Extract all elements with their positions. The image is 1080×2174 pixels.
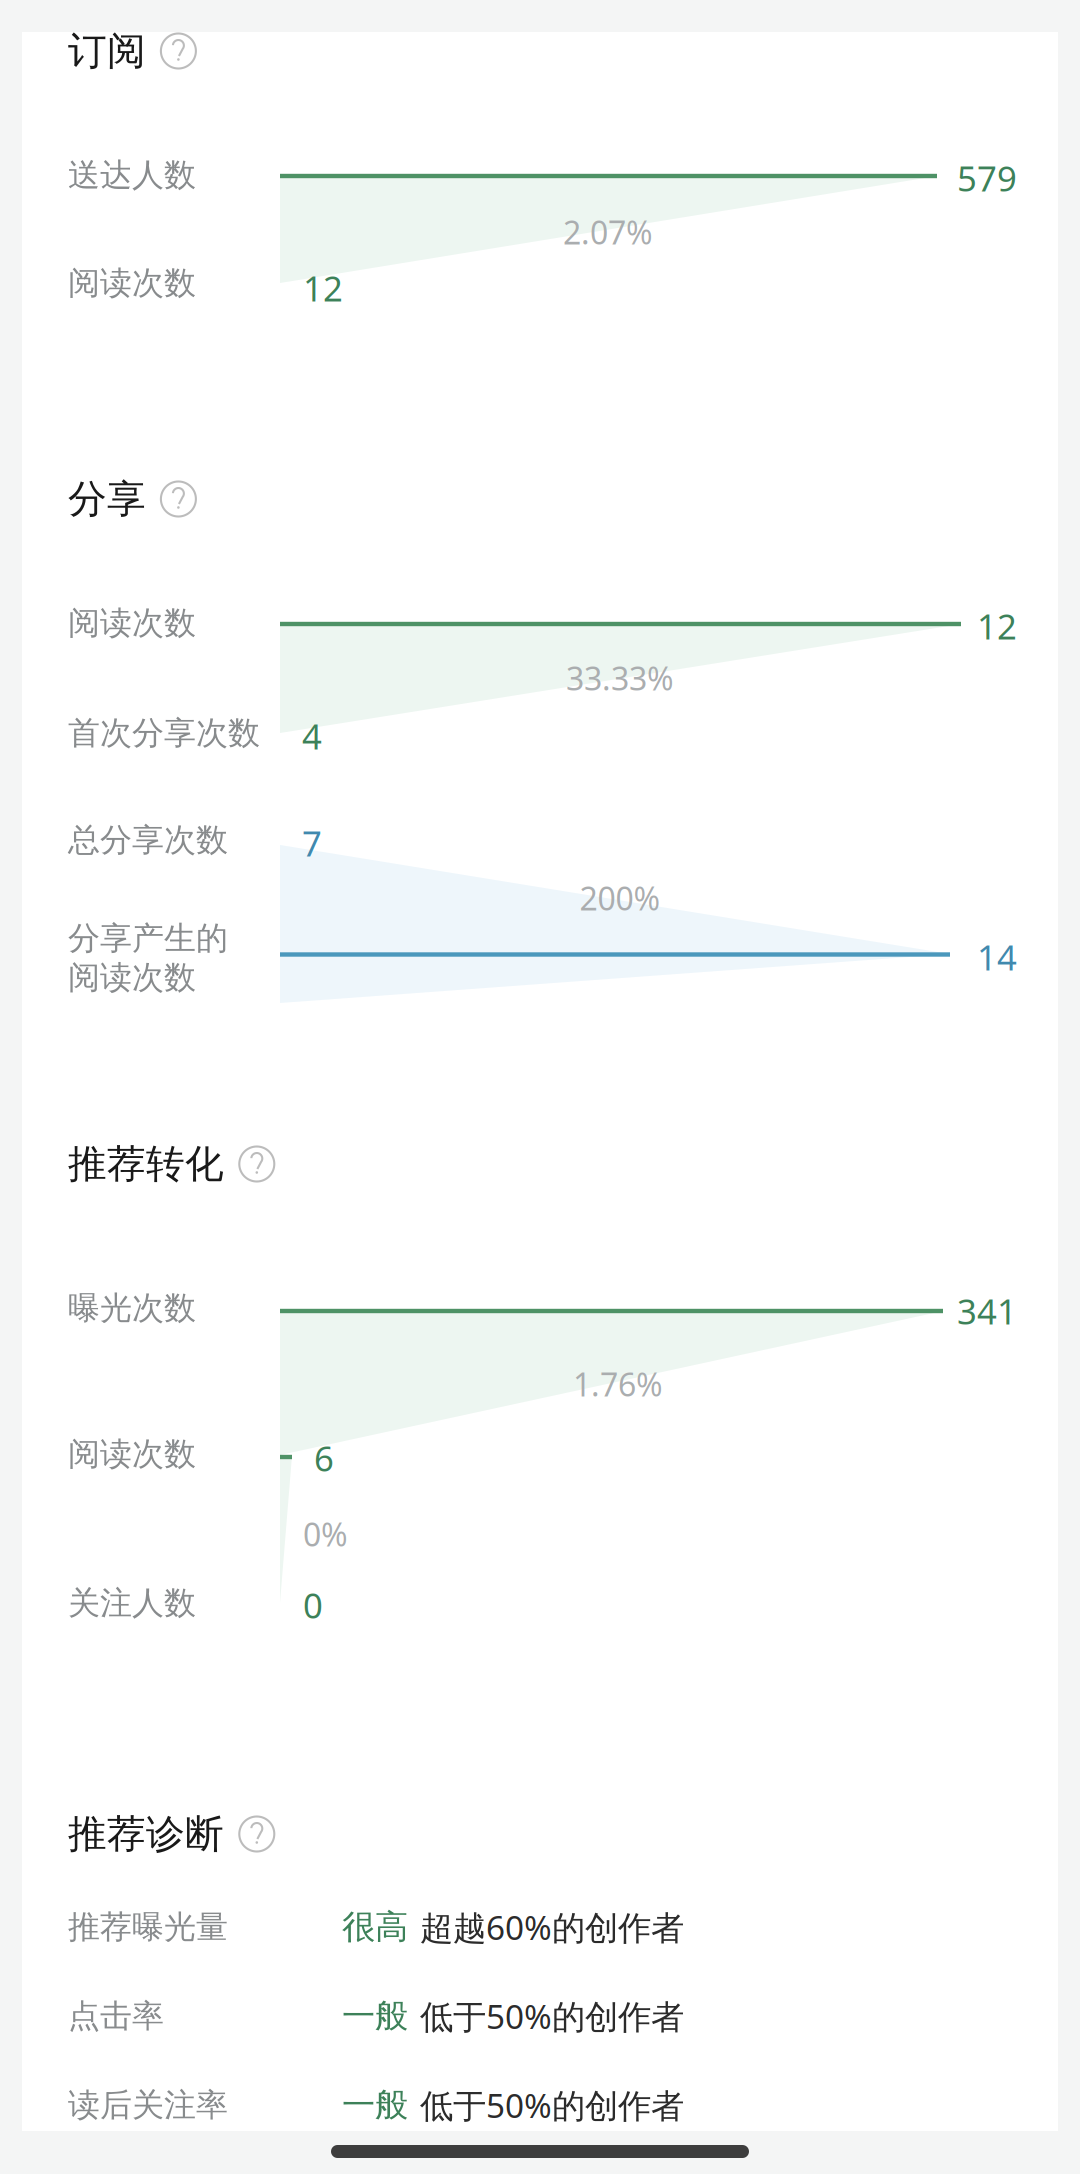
staticText: 低于50%的创作者 bbox=[420, 1994, 684, 2038]
staticText: 4 bbox=[302, 713, 322, 759]
staticText: 低于50%的创作者 bbox=[420, 2083, 684, 2127]
staticText: 579 bbox=[957, 155, 1017, 201]
staticText: 12 bbox=[303, 265, 343, 311]
staticText: 0% bbox=[303, 1513, 348, 1555]
staticText: 订阅 bbox=[68, 27, 146, 75]
staticText: 曝光次数 bbox=[68, 1288, 196, 1328]
button[interactable]: 关于订阅 bbox=[150, 23, 206, 79]
staticText: 7 bbox=[302, 820, 322, 866]
staticText: 阅读次数 bbox=[68, 263, 196, 303]
button[interactable]: 关于推荐转化 bbox=[229, 1136, 285, 1192]
staticText: 2.07% bbox=[563, 211, 653, 253]
staticText: 分享 bbox=[68, 475, 146, 523]
staticText: 送达人数 bbox=[68, 155, 196, 195]
staticText: 推荐诊断 bbox=[68, 1810, 224, 1858]
staticText: 总分享次数 bbox=[68, 820, 228, 860]
staticText: 12 bbox=[977, 603, 1017, 649]
staticText: 6 bbox=[314, 1435, 334, 1481]
staticText: 超越60%的创作者 bbox=[420, 1905, 684, 1949]
staticText: 341 bbox=[957, 1288, 1017, 1334]
staticText: 一般 bbox=[342, 2084, 408, 2125]
staticText: 首次分享次数 bbox=[68, 713, 260, 753]
staticText: 0 bbox=[303, 1582, 323, 1628]
staticText: 读后关注率 bbox=[68, 2085, 228, 2125]
staticText: 关注人数 bbox=[68, 1583, 196, 1623]
button[interactable]: 关于分享 bbox=[150, 471, 206, 527]
staticText: 分享产生的 阅读次数 bbox=[68, 919, 228, 997]
staticText: 一般 bbox=[342, 1995, 408, 2036]
staticText: 1.76% bbox=[573, 1363, 663, 1405]
button[interactable]: 关于推荐诊断 bbox=[229, 1806, 285, 1862]
staticText: 点击率 bbox=[68, 1996, 164, 2036]
staticText: 14 bbox=[977, 934, 1017, 980]
staticText: 推荐曝光量 bbox=[68, 1907, 228, 1947]
staticText: 很高 bbox=[342, 1906, 408, 1947]
staticText: 推荐转化 bbox=[68, 1140, 224, 1188]
staticText: 33.33% bbox=[566, 657, 674, 699]
staticText: 阅读次数 bbox=[68, 1434, 196, 1474]
staticText: 阅读次数 bbox=[68, 603, 196, 643]
staticText: 200% bbox=[579, 877, 660, 919]
